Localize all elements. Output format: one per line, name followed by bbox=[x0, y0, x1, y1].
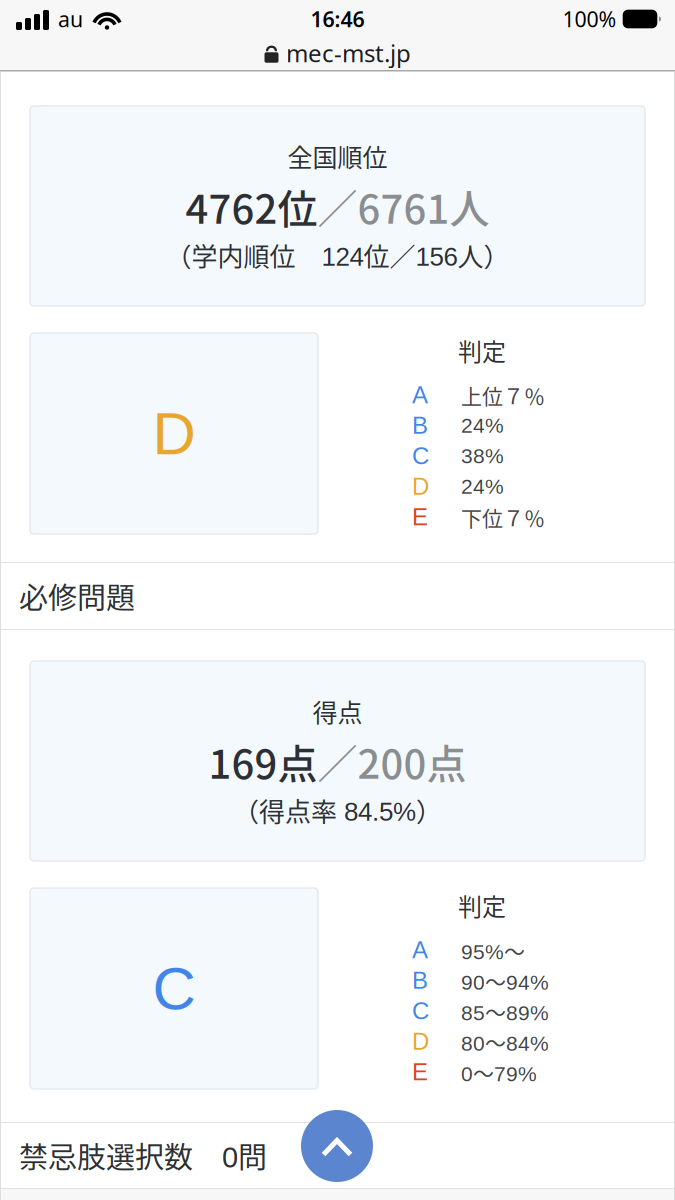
staticText: mec-mst.jp bbox=[286, 37, 411, 69]
staticText: 得点 bbox=[312, 693, 362, 729]
staticText: 判定 bbox=[458, 333, 506, 368]
staticText: A bbox=[412, 937, 428, 963]
staticText: C bbox=[152, 955, 195, 1022]
staticText: A bbox=[412, 382, 428, 408]
staticText: 24% bbox=[461, 414, 504, 437]
staticText: 80〜84% bbox=[461, 1026, 549, 1057]
staticText: D bbox=[152, 400, 195, 467]
staticText: B bbox=[412, 967, 428, 994]
staticText: E bbox=[412, 504, 428, 530]
staticText: 200点 bbox=[357, 732, 466, 790]
button[interactable]: Scroll to top bbox=[301, 1110, 373, 1182]
staticText: 95%〜 bbox=[461, 935, 525, 965]
staticText: 全国順位 bbox=[287, 138, 387, 174]
staticText: C bbox=[412, 998, 429, 1024]
staticText: 下位７％ bbox=[461, 502, 545, 532]
staticText: ／ bbox=[317, 177, 357, 235]
staticText: 24% bbox=[461, 475, 504, 498]
staticText: 90〜94% bbox=[461, 965, 549, 996]
staticText: B bbox=[412, 412, 428, 439]
staticText: 85〜89% bbox=[461, 996, 549, 1026]
staticText: 0〜79% bbox=[461, 1057, 537, 1087]
staticText: au bbox=[58, 5, 83, 33]
staticText: C bbox=[412, 443, 429, 469]
staticText: 判定 bbox=[458, 888, 506, 923]
staticText: D bbox=[412, 1028, 429, 1055]
staticText: ／ bbox=[317, 732, 357, 790]
staticText: 禁忌肢選択数 0問 bbox=[19, 1134, 267, 1176]
staticText: （学内順位 124位／156人） bbox=[165, 236, 509, 274]
staticText: （得点率 84.5%） bbox=[233, 791, 442, 829]
staticText: 4762位 bbox=[185, 177, 317, 235]
staticText: 6761人 bbox=[357, 177, 489, 235]
staticText: 必修問題 bbox=[19, 575, 135, 617]
staticText: 上位７％ bbox=[461, 380, 545, 410]
staticText: 38% bbox=[461, 444, 504, 468]
button[interactable]: mec-mst.jp bbox=[0, 37, 675, 69]
staticText: E bbox=[412, 1059, 428, 1085]
staticText: 16:46 bbox=[310, 5, 364, 33]
staticText: 100% bbox=[562, 5, 616, 33]
staticText: 169点 bbox=[208, 732, 317, 790]
staticText: D bbox=[412, 473, 429, 500]
